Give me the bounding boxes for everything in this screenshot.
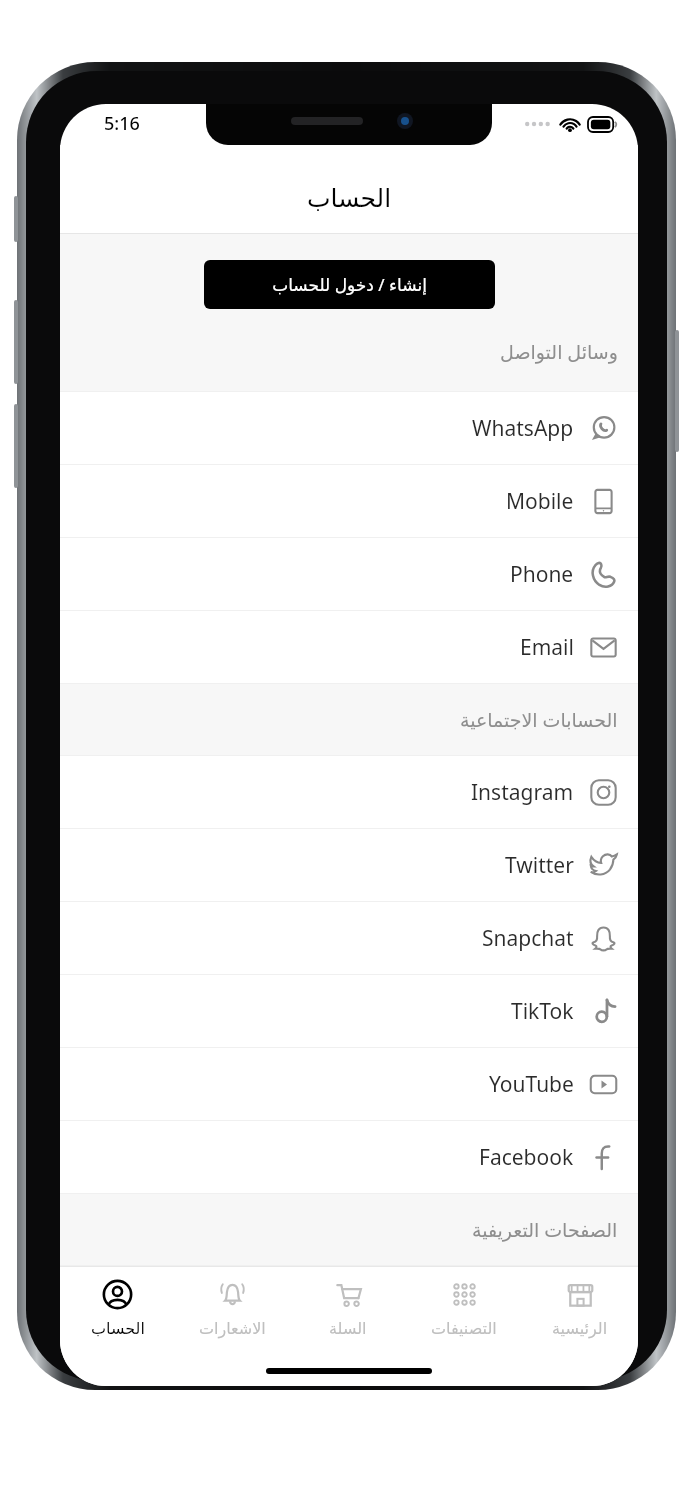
button[interactable]: WhatsApp bbox=[60, 392, 638, 464]
staticText: Phone bbox=[510, 560, 574, 589]
button[interactable]: Mobile bbox=[60, 465, 638, 537]
button[interactable]: السلة bbox=[290, 1267, 406, 1363]
staticText: Instagram bbox=[471, 778, 574, 807]
staticText: الرئيسية bbox=[552, 1319, 608, 1338]
button[interactable]: Email bbox=[60, 611, 638, 683]
staticText: الحساب bbox=[307, 184, 392, 213]
staticText: Facebook bbox=[479, 1143, 574, 1172]
staticText: الحساب bbox=[91, 1319, 145, 1338]
staticText: Mobile bbox=[506, 487, 574, 516]
button[interactable]: TikTok bbox=[60, 975, 638, 1047]
staticText: 5:16 bbox=[104, 111, 140, 136]
staticText: الاشعارات bbox=[199, 1319, 266, 1338]
staticText: Email bbox=[520, 633, 574, 662]
button[interactable]: الحساب bbox=[60, 1267, 175, 1363]
staticText: إنشاء / دخول للحساب bbox=[272, 273, 427, 296]
button[interactable]: الاشعارات bbox=[175, 1267, 290, 1363]
staticText: Twitter bbox=[505, 851, 574, 880]
button[interactable]: Twitter bbox=[60, 829, 638, 901]
button[interactable]: Phone bbox=[60, 538, 638, 610]
staticText: Snapchat bbox=[482, 924, 574, 953]
button[interactable]: YouTube bbox=[60, 1048, 638, 1120]
button[interactable]: Instagram bbox=[60, 756, 638, 828]
button[interactable]: التصنيفات bbox=[406, 1267, 522, 1363]
button[interactable]: إنشاء / دخول للحساب bbox=[204, 260, 495, 309]
staticText: وسائل التواصل bbox=[500, 339, 618, 365]
staticText: السلة bbox=[329, 1319, 367, 1338]
button[interactable]: Facebook bbox=[60, 1121, 638, 1193]
button[interactable]: الرئيسية bbox=[522, 1267, 638, 1363]
staticText: WhatsApp bbox=[472, 414, 574, 443]
staticText: الصفحات التعريفية bbox=[472, 1217, 618, 1243]
staticText: التصنيفات bbox=[431, 1319, 497, 1338]
staticText: الحسابات الاجتماعية bbox=[460, 707, 618, 733]
staticText: TikTok bbox=[511, 997, 574, 1026]
staticText: YouTube bbox=[489, 1070, 574, 1099]
button[interactable]: Snapchat bbox=[60, 902, 638, 974]
